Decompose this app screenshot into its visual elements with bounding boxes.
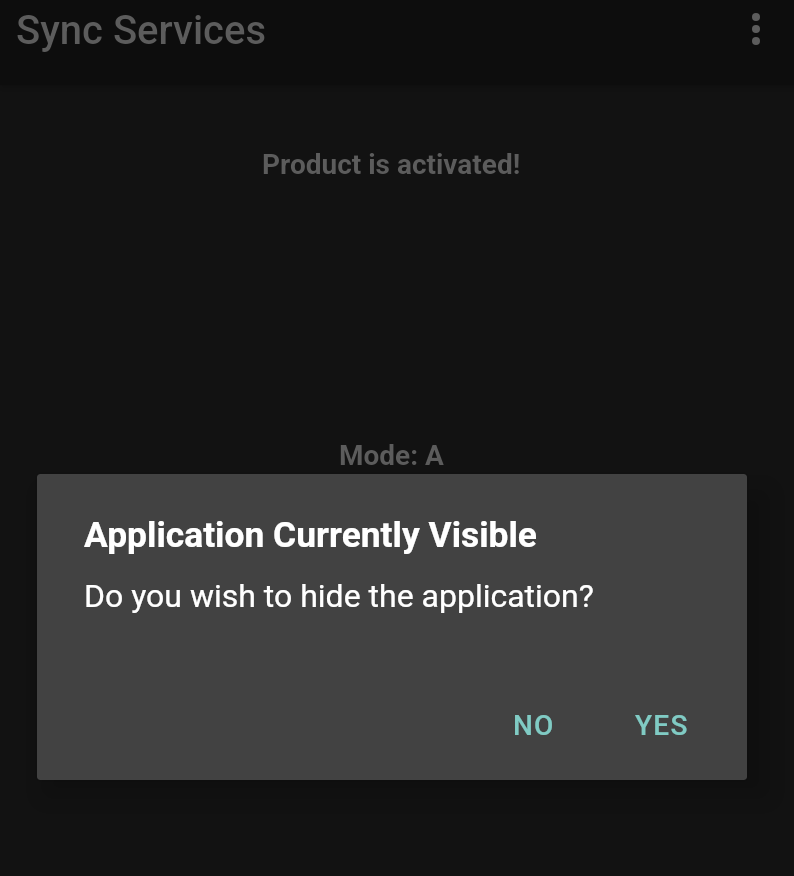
staticText: Product is activated! [262,148,521,181]
button[interactable]: YES [619,693,705,758]
button[interactable]: More options [710,0,794,85]
staticText: Do you wish to hide the application? [84,577,594,615]
staticText: Sync Services [16,7,266,54]
staticText: Mode: A [339,439,444,472]
staticText: NO [513,709,555,742]
staticText: Application Currently Visible [84,514,537,555]
button[interactable]: NO [497,693,571,758]
staticText: YES [635,709,689,742]
